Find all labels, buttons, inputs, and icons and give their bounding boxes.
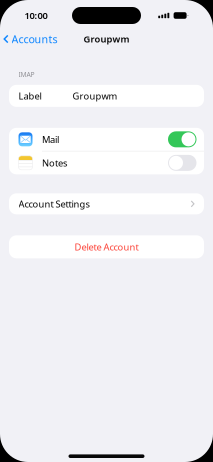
button[interactable]: On	[168, 131, 196, 147]
staticText: Label	[18, 90, 41, 102]
button[interactable]: Accounts	[0, 28, 63, 50]
button[interactable]: Delete Account	[9, 235, 204, 258]
button[interactable]: Off	[168, 155, 196, 171]
staticText: Groupwm	[72, 90, 117, 102]
staticText: IMAP	[18, 70, 34, 79]
staticText: 10:00	[24, 9, 47, 22]
staticText: Delete Account	[74, 241, 138, 253]
staticText: Account Settings	[18, 198, 89, 210]
staticText: Accounts	[11, 32, 57, 46]
button[interactable]: Account Settings	[9, 193, 204, 214]
staticText: Groupwm	[83, 33, 129, 45]
staticText: Notes	[42, 157, 67, 169]
staticText: Mail	[42, 133, 59, 146]
